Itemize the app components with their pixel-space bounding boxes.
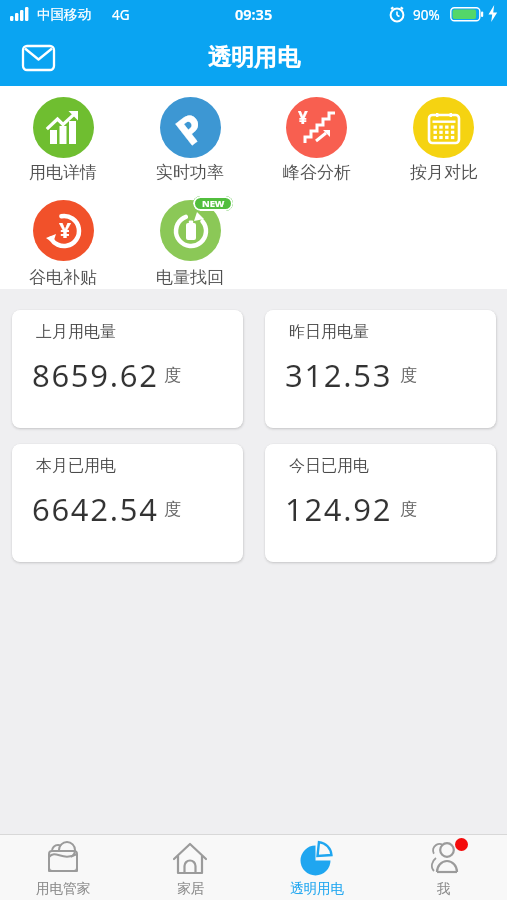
button[interactable]: 昨日用电量 xyxy=(265,310,496,428)
staticText: 按月对比 xyxy=(410,162,478,183)
button[interactable]: 我 xyxy=(389,836,499,900)
staticText: 度 xyxy=(164,499,181,520)
button[interactable] xyxy=(14,38,62,78)
button[interactable]: ¥ xyxy=(286,97,347,158)
staticText: 今日已用电 xyxy=(289,456,369,476)
staticText: 6642.54 xyxy=(32,488,159,530)
button[interactable] xyxy=(413,97,474,158)
button[interactable]: 本月已用电 xyxy=(12,444,243,562)
staticText: 312.53 xyxy=(285,354,393,396)
staticText: 度 xyxy=(400,365,417,386)
staticText: 实时功率 xyxy=(156,162,224,183)
button[interactable]: 今日已用电 xyxy=(265,444,496,562)
staticText: 谷电补贴 xyxy=(29,267,97,288)
staticText: 124.92 xyxy=(285,488,393,530)
staticText: 度 xyxy=(400,499,417,520)
button[interactable] xyxy=(33,97,94,158)
staticText: 用电管家 xyxy=(36,880,90,897)
staticText: 透明用电 xyxy=(290,880,344,897)
staticText: 峰谷分析 xyxy=(283,162,351,183)
staticText: 上月用电量 xyxy=(36,322,116,342)
staticText: 09:35 xyxy=(235,4,273,24)
staticText: 电量找回 xyxy=(156,267,224,288)
staticText: P xyxy=(164,100,215,156)
button[interactable]: P xyxy=(160,97,221,158)
staticText: 4G xyxy=(112,6,130,24)
button[interactable]: 用电管家 xyxy=(8,836,118,900)
button[interactable]: 家居 xyxy=(135,836,245,900)
staticText: 昨日用电量 xyxy=(289,322,369,342)
staticText: 家居 xyxy=(177,880,204,897)
staticText: 8659.62 xyxy=(32,354,159,396)
staticText: 90% xyxy=(413,6,440,24)
staticText: 我 xyxy=(437,880,451,897)
staticText: NEW xyxy=(202,197,225,210)
staticText: 本月已用电 xyxy=(36,456,116,476)
staticText: ¥ xyxy=(59,216,72,245)
staticText: 用电详情 xyxy=(29,162,97,183)
button[interactable]: ¥ xyxy=(33,200,94,261)
staticText: 度 xyxy=(164,365,181,386)
button[interactable]: 透明用电 xyxy=(262,836,372,900)
button[interactable] xyxy=(160,200,221,261)
staticText: 透明用电 xyxy=(208,43,300,72)
staticText: ¥ xyxy=(298,106,308,129)
staticText: 中国移动 xyxy=(37,6,91,23)
button[interactable]: 上月用电量 xyxy=(12,310,243,428)
